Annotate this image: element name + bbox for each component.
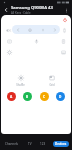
button[interactable]: Devices	[53, 141, 69, 147]
staticText: TV	[28, 142, 32, 146]
staticText: D	[59, 95, 62, 99]
button[interactable]: More options	[62, 6, 70, 14]
button[interactable]: Red button	[7, 92, 16, 101]
button[interactable]: Volume	[60, 26, 68, 34]
button[interactable]: Home	[26, 26, 33, 33]
button[interactable]: Next	[51, 26, 58, 33]
button[interactable]: Channel	[39, 26, 46, 33]
button[interactable]: Shuffle	[15, 73, 26, 88]
staticText: B	[26, 95, 29, 99]
staticText: 123	[40, 142, 46, 146]
button[interactable]: Previous	[14, 26, 21, 33]
staticText: Grid	[49, 83, 55, 87]
button[interactable]: Channels	[3, 141, 21, 147]
button[interactable]: Green button	[23, 92, 32, 101]
button[interactable]: Yellow button	[40, 92, 49, 101]
staticText: Samsung Q900BA 43	[11, 5, 53, 11]
staticText: Devices	[55, 142, 67, 146]
button[interactable]: 123	[38, 141, 48, 147]
button[interactable]: Blue button	[56, 92, 65, 101]
staticText: All Keys · Cable	[11, 11, 31, 14]
button[interactable]: Guide	[5, 37, 13, 45]
button[interactable]: Picture mode	[59, 48, 67, 56]
button[interactable]: Grid	[47, 73, 57, 88]
button[interactable]: Microphone	[32, 37, 40, 45]
button[interactable]: Info	[59, 37, 67, 45]
button[interactable]: Power	[61, 16, 68, 23]
staticText: Shuffle	[16, 83, 25, 87]
button[interactable]: Back	[2, 6, 10, 14]
button[interactable]: Settings	[5, 48, 13, 56]
button[interactable]: TV	[26, 141, 34, 147]
staticText: C	[43, 95, 46, 99]
button[interactable]: Mute	[4, 26, 12, 34]
staticText: Channels	[5, 142, 19, 146]
staticText: A	[10, 95, 13, 99]
